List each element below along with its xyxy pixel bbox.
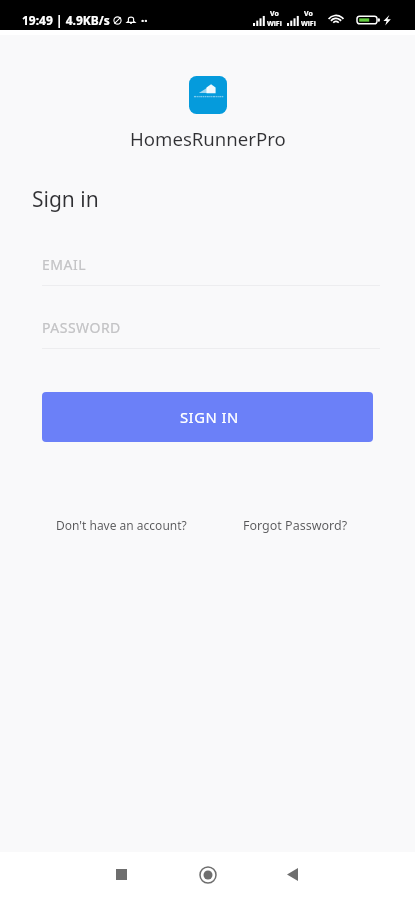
button[interactable]: SIGN IN: [42, 392, 373, 442]
button[interactable]: EMAIL: [42, 255, 380, 286]
staticText: EMAIL: [42, 255, 87, 274]
staticText: Forgot Password?: [243, 517, 348, 534]
staticText: WiFi: [267, 19, 282, 29]
button[interactable]: Don't have an account?: [48, 512, 195, 538]
button[interactable]: Back: [269, 852, 316, 897]
button[interactable]: Forgot Password?: [235, 512, 356, 539]
button[interactable]: Recent apps: [98, 852, 145, 897]
staticText: SIGN IN: [180, 407, 239, 427]
staticText: HomesRunnerPro: [130, 126, 286, 151]
staticText: PASSWORD: [42, 318, 121, 337]
button[interactable]: PASSWORD: [42, 318, 380, 349]
staticText: Vo: [304, 9, 313, 19]
button[interactable]: Home: [184, 852, 232, 897]
staticText: Sign in: [32, 185, 99, 214]
staticText: 19:49 | 4.9KB/s: [22, 12, 110, 28]
staticText: ··: [141, 12, 148, 28]
staticText: Don't have an account?: [56, 517, 187, 533]
staticText: WiFi: [301, 19, 316, 29]
staticText: Vo: [270, 9, 279, 19]
